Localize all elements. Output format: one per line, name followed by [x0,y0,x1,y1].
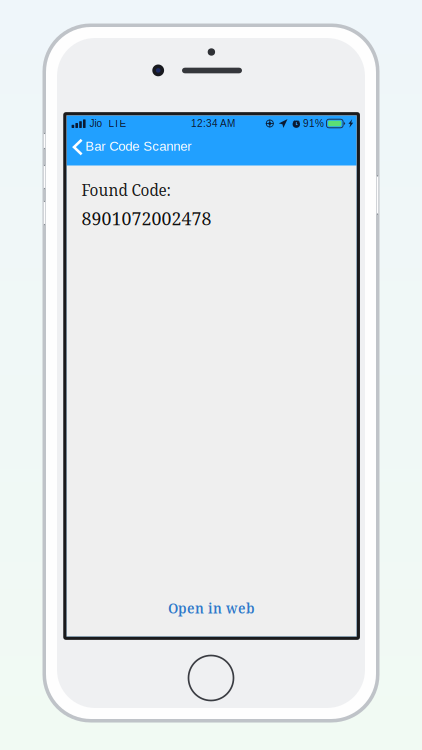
staticText: 8901072002478 [82,206,212,231]
staticText: LTE [109,118,127,129]
staticText: 12:34 AM [191,118,235,129]
staticText: Open in web [168,599,255,617]
staticText: Found Code: [82,179,171,200]
button[interactable]: Open in web [168,599,255,617]
button[interactable]: Bar Code Scanner [67,131,357,165]
staticText: Bar Code Scanner [85,139,191,153]
staticText: 91% [303,118,324,129]
staticText: Jio [90,118,103,129]
